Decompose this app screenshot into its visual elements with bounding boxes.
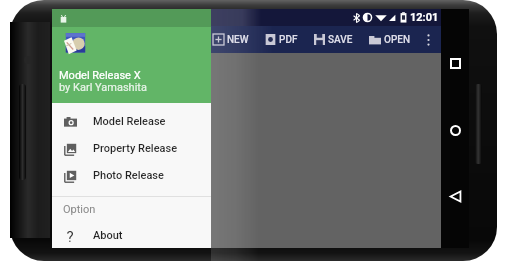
staticText: NEW [227, 34, 249, 46]
button[interactable]: Recents [441, 49, 469, 77]
button[interactable]: NEW [209, 26, 253, 53]
button[interactable]: Back [441, 182, 469, 210]
button[interactable]: Model Release [52, 108, 211, 135]
button[interactable]: OPEN [365, 26, 415, 53]
button[interactable]: Photo Release [52, 162, 211, 189]
button[interactable]: PDF [261, 26, 302, 53]
staticText: ? [66, 228, 74, 242]
staticText: Model Release [93, 115, 166, 128]
staticText: 12:01 [410, 11, 439, 24]
button[interactable]: ? [52, 222, 211, 248]
staticText: PDF [279, 34, 298, 46]
staticText: OPEN [384, 34, 411, 46]
staticText: About [93, 229, 123, 242]
staticText: Photo Release [93, 169, 164, 182]
button[interactable]: SAVE [310, 26, 357, 53]
button[interactable]: More options [420, 32, 436, 48]
button[interactable]: Home [441, 116, 469, 144]
button[interactable]: Property Release [52, 135, 211, 162]
staticText: Option [63, 203, 96, 216]
staticText: Property Release [93, 142, 178, 155]
staticText: Model Release X [59, 69, 141, 82]
staticText: SAVE [328, 34, 353, 46]
staticText: by Karl Yamashita [59, 81, 147, 94]
